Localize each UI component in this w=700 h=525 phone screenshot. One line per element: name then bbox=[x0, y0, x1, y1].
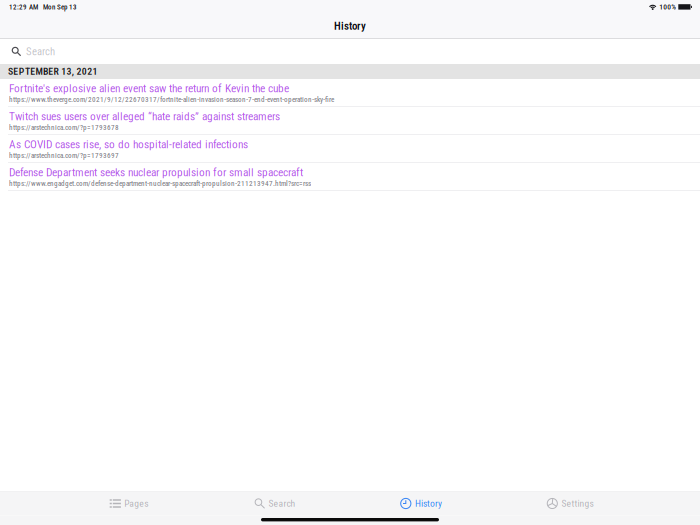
staticText: https://arstechnica.com/?p=1793678 bbox=[9, 123, 119, 132]
button[interactable]: Fortnite's explosive alien event saw the… bbox=[0, 79, 700, 107]
button[interactable]: Search bbox=[202, 492, 348, 514]
staticText: https://www.theverge.com/2021/9/12/22670… bbox=[9, 95, 334, 104]
staticText: https://arstechnica.com/?p=1793697 bbox=[9, 151, 119, 160]
staticText: Defense Department seeks nuclear propuls… bbox=[9, 166, 303, 179]
staticText: 100% bbox=[659, 3, 676, 11]
staticText: Twitch sues users over alleged “hate rai… bbox=[9, 110, 280, 123]
staticText: Settings bbox=[561, 498, 593, 509]
staticText: Search bbox=[268, 498, 295, 509]
staticText: Mon Sep 13 bbox=[43, 3, 77, 11]
button[interactable]: History bbox=[348, 492, 494, 514]
staticText: SEPTEMBER 13, 2021 bbox=[8, 66, 97, 77]
button[interactable]: Defense Department seeks nuclear propuls… bbox=[0, 163, 700, 191]
button[interactable]: As COVID cases rise, so do hospital-rela… bbox=[0, 135, 700, 163]
staticText: https://www.engadget.com/defense-departm… bbox=[9, 179, 311, 188]
staticText: Pages bbox=[124, 498, 148, 509]
button[interactable]: Twitch sues users over alleged “hate rai… bbox=[0, 107, 700, 135]
button[interactable]: Settings bbox=[494, 492, 646, 514]
staticText: 12:29 AM bbox=[9, 3, 38, 11]
staticText: As COVID cases rise, so do hospital-rela… bbox=[9, 138, 248, 151]
button[interactable]: Search bbox=[0, 39, 700, 64]
staticText: Search bbox=[26, 45, 55, 58]
staticText: History bbox=[415, 498, 442, 509]
staticText: History bbox=[334, 20, 366, 32]
staticText: Fortnite's explosive alien event saw the… bbox=[9, 82, 289, 95]
button[interactable]: Pages bbox=[56, 492, 202, 514]
